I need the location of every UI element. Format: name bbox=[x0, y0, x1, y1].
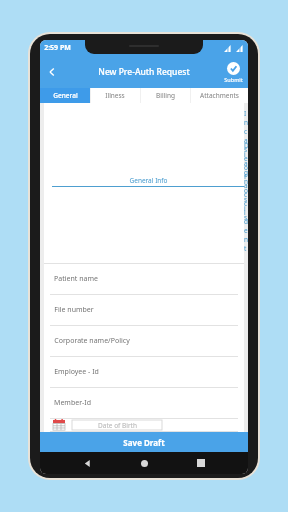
staticText: Corporate name/Policy bbox=[54, 336, 130, 346]
staticText: General bbox=[53, 91, 78, 100]
button[interactable]: General Info bbox=[52, 176, 244, 187]
button[interactable]: Save Draft bbox=[40, 432, 248, 452]
button[interactable]: Home bbox=[134, 453, 154, 473]
staticText: Save Draft bbox=[123, 437, 165, 448]
staticText: New Pre-Auth Request bbox=[98, 66, 190, 78]
button[interactable]: Back bbox=[77, 453, 97, 473]
staticText: Illness bbox=[105, 91, 125, 100]
staticText: Attachments bbox=[200, 91, 239, 100]
staticText: Patient name bbox=[54, 274, 98, 284]
button[interactable]: Corporate name/Policy bbox=[44, 326, 244, 357]
button[interactable]: Recents bbox=[191, 453, 211, 473]
staticText: Employee - Id bbox=[54, 367, 99, 377]
button[interactable]: Patient name bbox=[44, 264, 244, 295]
staticText: Submit bbox=[224, 76, 243, 83]
button[interactable]: Illness bbox=[90, 88, 140, 103]
button[interactable]: Attachments bbox=[190, 88, 248, 103]
staticText: Date of Birth bbox=[98, 421, 137, 430]
staticText: 2:59 PM bbox=[44, 43, 71, 53]
button[interactable]: File number bbox=[44, 295, 244, 326]
button[interactable]: Billing bbox=[140, 88, 190, 103]
staticText: File number bbox=[54, 305, 94, 315]
staticText: Member-Id bbox=[54, 398, 91, 408]
staticText: Billing bbox=[156, 91, 175, 100]
button[interactable]: General bbox=[40, 88, 90, 103]
button[interactable]: Submit bbox=[224, 62, 243, 83]
button[interactable]: Back bbox=[40, 60, 64, 84]
button[interactable]: Member-Id bbox=[44, 388, 244, 419]
button[interactable]: Date of Birth bbox=[44, 419, 244, 432]
staticText: General Info bbox=[129, 176, 168, 185]
button[interactable]: Employee - Id bbox=[44, 357, 244, 388]
